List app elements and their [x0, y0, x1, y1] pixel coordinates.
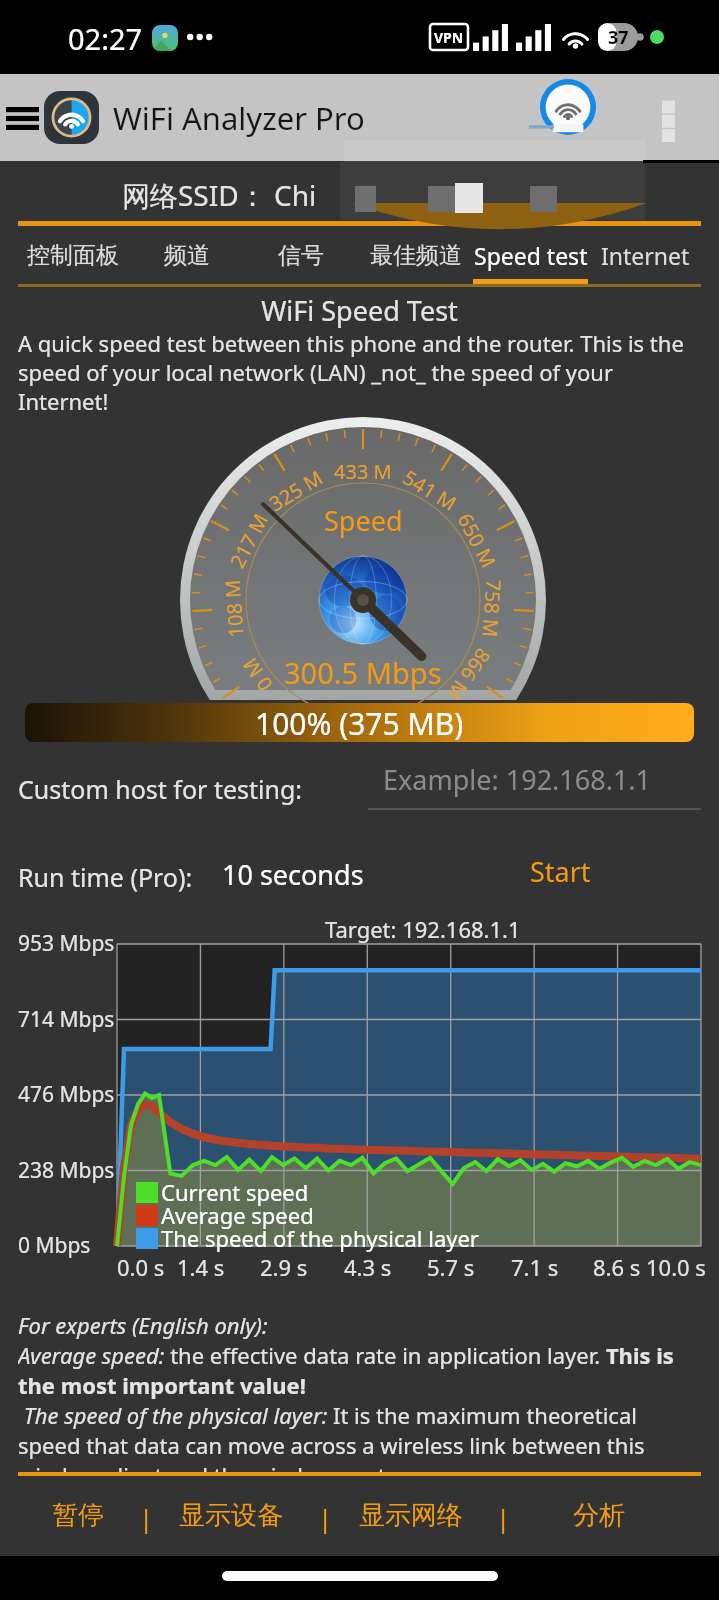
- staticText: Target: 192.168.1.1: [325, 914, 521, 944]
- staticText: 网络SSID： Chi: [122, 176, 317, 214]
- staticText: 控制面板: [27, 241, 119, 270]
- staticText: 10.0 s: [646, 1252, 706, 1282]
- staticText: 7.1 s: [511, 1252, 559, 1282]
- staticText: Start: [530, 853, 591, 890]
- staticText: 650 M: [452, 508, 502, 572]
- staticText: 5.7 s: [427, 1252, 475, 1282]
- staticText: 300.5 Mbps: [284, 653, 442, 692]
- staticText: 108 M: [219, 579, 249, 638]
- staticText: The speed of the physical layer: [161, 1223, 479, 1253]
- button[interactable]: Example: 192.168.1.1: [368, 755, 701, 810]
- staticText: Speed test: [474, 240, 588, 271]
- staticText: Run time (Pro):: [18, 860, 193, 894]
- staticText: 最佳频道: [370, 241, 462, 270]
- staticText: 显示网络: [359, 1499, 463, 1532]
- staticText: |: [496, 1500, 511, 1535]
- button[interactable]: 信号: [244, 228, 358, 286]
- staticText: 541 M: [398, 464, 462, 517]
- staticText: 238 Mbps: [18, 1156, 115, 1185]
- button[interactable]: Menu: [0, 87, 44, 149]
- staticText: VPN: [434, 28, 464, 47]
- staticText: 953 Mbps: [18, 929, 115, 958]
- staticText: 758 M: [477, 579, 507, 638]
- staticText: 100% (375 MB): [255, 703, 464, 742]
- button[interactable]: 最佳频道: [358, 228, 473, 286]
- staticText: 325 M: [264, 464, 328, 517]
- staticText: 217 M: [224, 508, 274, 572]
- staticText: 暂停: [52, 1499, 104, 1532]
- staticText: 信号: [278, 241, 324, 270]
- staticText: For experts (English only): Average spee…: [18, 1310, 701, 1476]
- staticText: WiFi Speed Test: [0, 292, 719, 329]
- staticText: 8.6 s: [593, 1252, 641, 1282]
- staticText: 433 M: [334, 458, 392, 485]
- staticText: Example: 192.168.1.1: [383, 761, 701, 798]
- button[interactable]: Start: [515, 846, 605, 896]
- staticText: |: [318, 1500, 333, 1535]
- staticText: 频道: [164, 241, 210, 270]
- button[interactable]: 显示设备: [161, 1484, 301, 1546]
- staticText: Custom host for testing:: [18, 772, 302, 806]
- staticText: 866 M: [441, 643, 497, 706]
- button[interactable]: WiFi signal strength: [528, 79, 608, 159]
- button[interactable]: Internet: [588, 228, 703, 286]
- staticText: WiFi Analyzer Pro: [113, 97, 365, 139]
- staticText: 分析: [573, 1499, 625, 1532]
- staticText: 714 Mbps: [18, 1005, 115, 1034]
- staticText: Current speed: [161, 1177, 309, 1207]
- staticText: 4.3 s: [344, 1252, 392, 1282]
- button[interactable]: More options: [645, 86, 691, 150]
- button[interactable]: 暂停: [8, 1484, 148, 1546]
- staticText: Internet: [601, 240, 690, 271]
- staticText: 0 M: [236, 652, 279, 697]
- staticText: Speed: [324, 502, 403, 539]
- button[interactable]: 显示网络: [341, 1484, 481, 1546]
- button[interactable]: Speed test: [473, 228, 588, 286]
- staticText: 476 Mbps: [18, 1080, 115, 1109]
- button[interactable]: 控制面板: [16, 228, 130, 286]
- staticText: Average speed: [161, 1200, 314, 1230]
- staticText: 2.9 s: [260, 1252, 308, 1282]
- staticText: 02:27: [68, 19, 143, 58]
- button[interactable]: 分析: [529, 1484, 669, 1546]
- staticText: 1.4 s: [177, 1252, 225, 1282]
- staticText: 0 Mbps: [18, 1231, 91, 1260]
- staticText: |: [139, 1500, 154, 1535]
- staticText: 显示设备: [179, 1499, 283, 1532]
- button[interactable]: 频道: [130, 228, 244, 286]
- staticText: 37: [608, 25, 629, 50]
- staticText: A quick speed test between this phone an…: [18, 328, 701, 416]
- staticText: 10 seconds: [222, 856, 364, 893]
- staticText: 0.0 s: [117, 1252, 165, 1282]
